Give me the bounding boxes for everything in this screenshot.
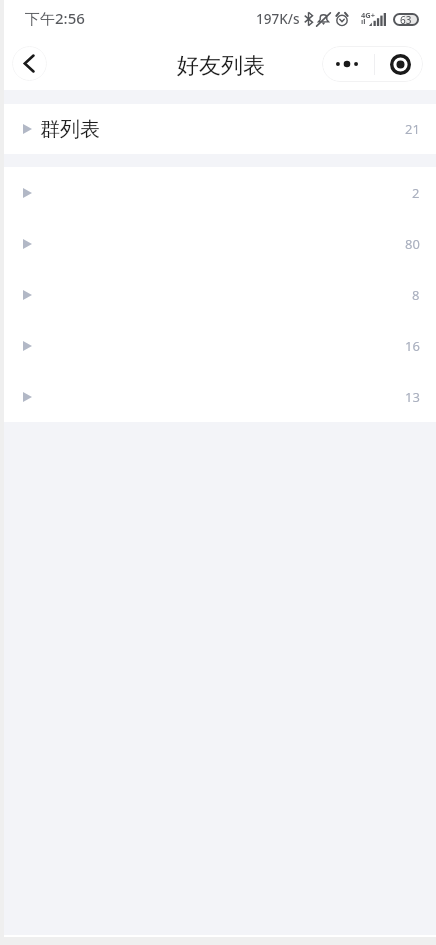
button[interactable]: 16 — [4, 320, 436, 371]
staticText: 4G+ — [361, 10, 376, 20]
button[interactable]: More options — [322, 46, 374, 82]
button[interactable]: 2 — [4, 167, 436, 218]
staticText: 8 — [412, 286, 420, 304]
staticText: 80 — [405, 235, 420, 253]
staticText: ıl — [361, 16, 366, 26]
staticText: 197K/s — [256, 10, 300, 28]
staticText: 16 — [405, 337, 420, 355]
staticText: 好友列表 — [177, 52, 265, 80]
staticText: 13 — [405, 388, 420, 406]
button[interactable]: 13 — [4, 371, 436, 422]
button[interactable]: 8 — [4, 269, 436, 320]
staticText: 下午2:56 — [25, 8, 85, 28]
staticText: 2 — [412, 184, 420, 202]
button[interactable]: Back — [12, 46, 47, 81]
button[interactable]: Record — [375, 46, 423, 82]
button[interactable]: 80 — [4, 218, 436, 269]
staticText: 63 — [400, 13, 412, 26]
staticText: 21 — [405, 120, 420, 138]
button[interactable]: 群列表 — [4, 104, 436, 154]
staticText: 群列表 — [40, 117, 100, 142]
